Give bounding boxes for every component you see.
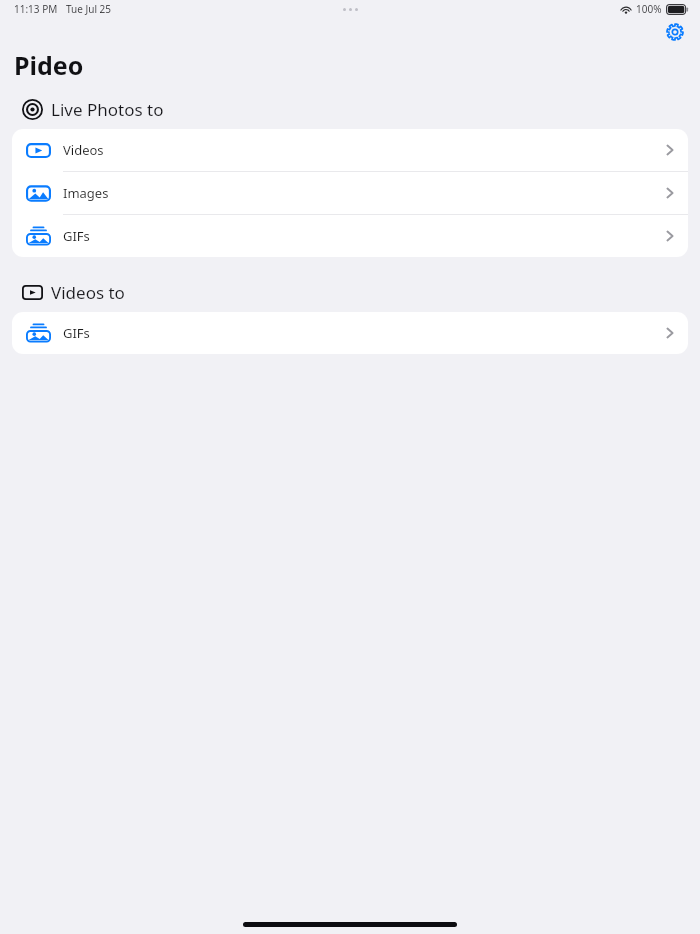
- button[interactable]: Images: [12, 172, 688, 214]
- button[interactable]: Videos: [12, 129, 688, 171]
- staticText: Pideo: [14, 48, 84, 82]
- staticText: Images: [63, 184, 666, 202]
- staticText: Videos: [63, 141, 666, 159]
- staticText: Live Photos to: [51, 98, 164, 121]
- staticText: Tue Jul 25: [66, 2, 112, 16]
- button[interactable]: GIFs: [12, 312, 688, 354]
- staticText: 11:13 PM: [14, 2, 58, 16]
- staticText: Videos to: [51, 281, 125, 304]
- button[interactable]: Settings: [658, 18, 692, 46]
- staticText: GIFs: [63, 324, 666, 342]
- button[interactable]: GIFs: [12, 215, 688, 257]
- staticText: 100%: [636, 2, 662, 16]
- staticText: GIFs: [63, 227, 666, 245]
